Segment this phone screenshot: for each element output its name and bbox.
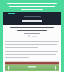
button[interactable]: Play session video: [3, 12, 61, 25]
button[interactable]: Practice field photo: [5, 61, 59, 71]
button[interactable]: Play session video: [22, 20, 42, 22]
